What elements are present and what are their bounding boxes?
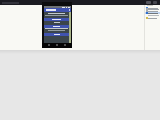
button[interactable]: Account xyxy=(146,1,151,4)
button[interactable] xyxy=(145,7,160,9)
button[interactable] xyxy=(145,12,160,14)
button[interactable] xyxy=(145,17,160,19)
button[interactable] xyxy=(44,18,69,21)
button[interactable]: More options xyxy=(153,1,157,4)
button[interactable] xyxy=(145,8,160,10)
button[interactable] xyxy=(44,33,69,36)
button[interactable] xyxy=(145,10,160,12)
button[interactable] xyxy=(44,25,69,28)
